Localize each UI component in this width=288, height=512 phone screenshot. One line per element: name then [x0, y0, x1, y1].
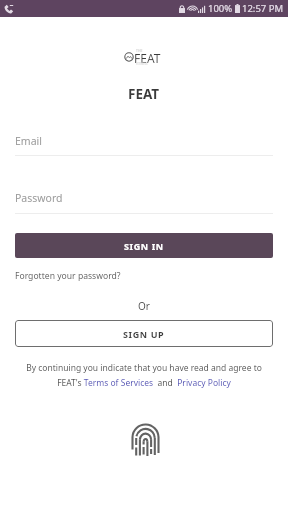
- staticText: Email: [15, 134, 42, 148]
- button[interactable]: Fingerprint sign in: [132, 422, 159, 456]
- staticText: Password: [15, 191, 63, 205]
- button[interactable]: SIGN UP: [15, 320, 273, 347]
- staticText: FITNESS: [136, 62, 148, 66]
- staticText: Forgotten your password?: [15, 270, 121, 282]
- staticText: FEAT: [134, 50, 161, 66]
- staticText: FEAT: [128, 85, 160, 103]
- staticText: 100%: [208, 2, 233, 15]
- staticText: SIGN UP: [123, 328, 165, 340]
- staticText: Or: [138, 299, 150, 313]
- staticText: SIGN IN: [124, 240, 164, 252]
- staticText: 12:57 PM: [242, 2, 284, 15]
- button[interactable]: Forgotten your password?: [15, 270, 121, 282]
- staticText: By continuing you indicate that you have…: [0, 362, 288, 389]
- staticText: THE: [136, 48, 143, 53]
- button[interactable]: SIGN IN: [15, 233, 273, 258]
